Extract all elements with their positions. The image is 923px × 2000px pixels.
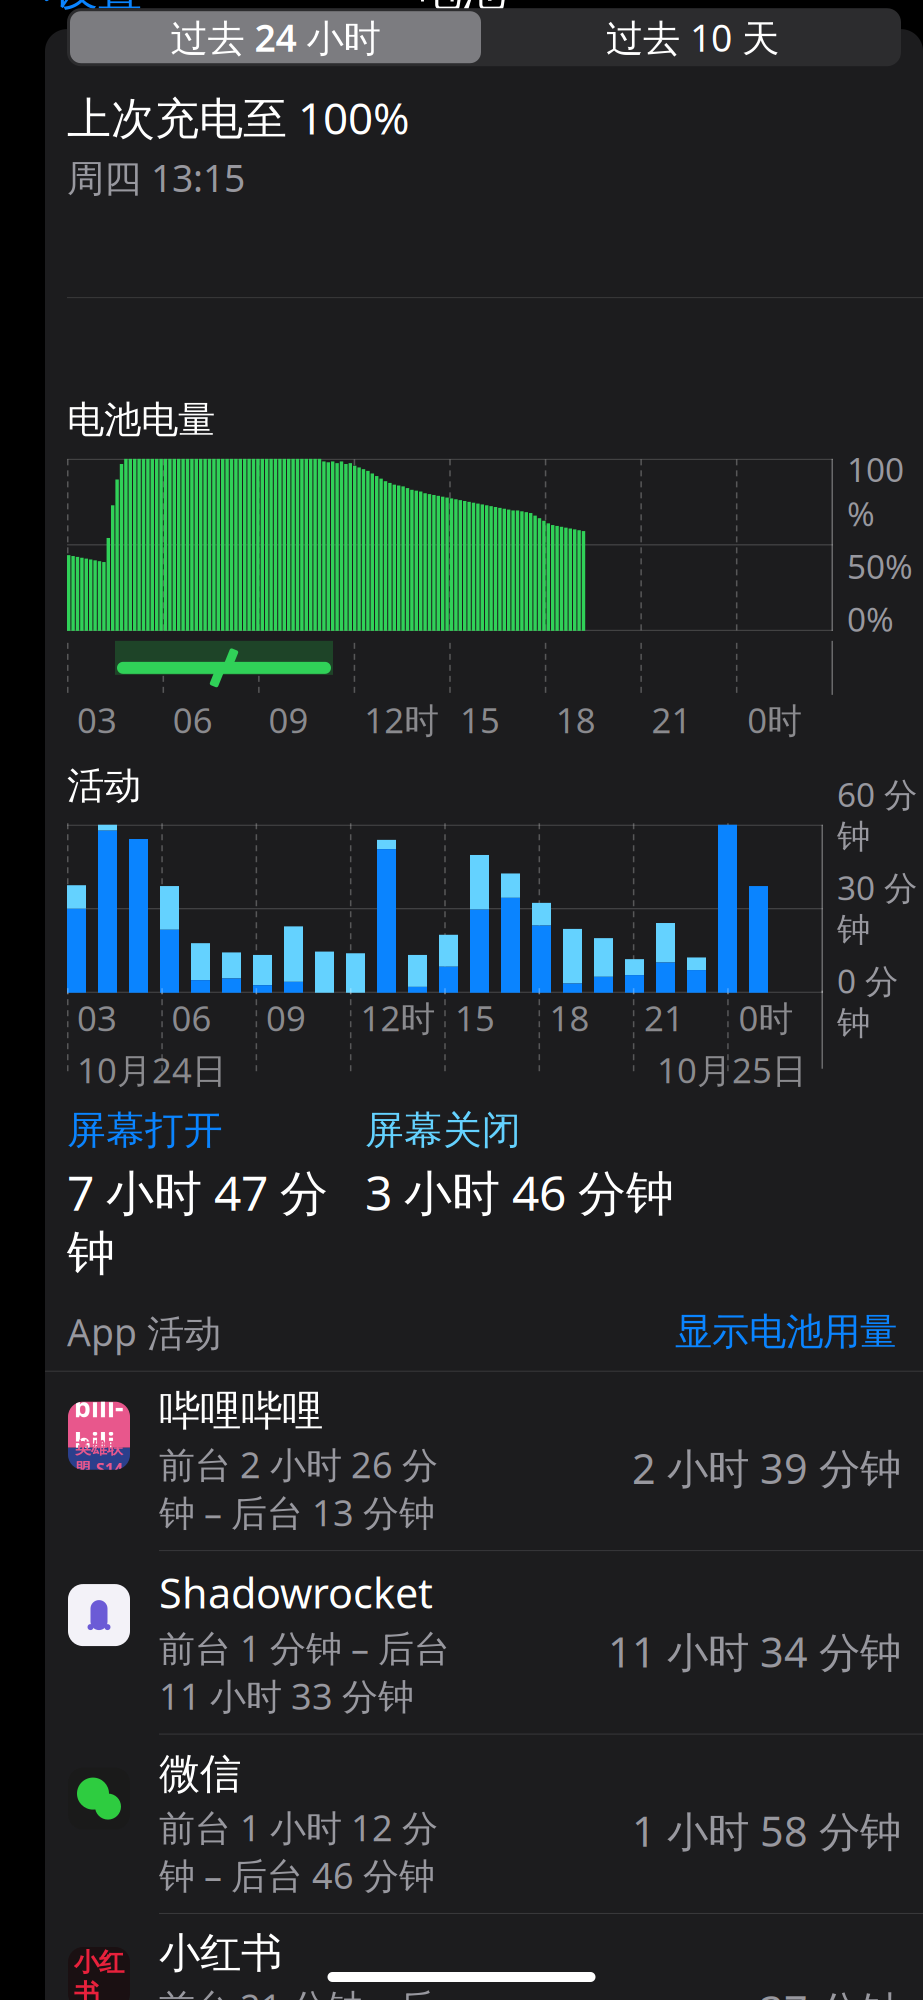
staticText: 10月25日 <box>657 1047 807 1093</box>
staticText: 前台 2 小时 26 分钟 – 后台 13 分钟 <box>159 1440 438 1536</box>
staticText: Shadowrocket <box>159 1565 433 1620</box>
button[interactable]: 过去 24 小时 <box>67 8 484 66</box>
staticText: 18 <box>556 697 596 743</box>
staticText: 上次充电至 100% <box>67 88 410 147</box>
button[interactable]: 过去 10 天 <box>484 8 901 66</box>
staticText: 15 <box>455 995 495 1041</box>
staticText: 21 <box>644 995 684 1041</box>
staticText: 屏幕打开 <box>67 1107 223 1154</box>
staticText: 03 <box>77 995 117 1041</box>
staticText: 7 小时 47 分钟 <box>67 1160 328 1283</box>
button[interactable]: Shadowrocket <box>45 1551 923 1735</box>
staticText: 60 分钟 <box>837 772 917 857</box>
staticText: 1 小时 58 分钟 <box>632 1803 901 1858</box>
staticText: 12时 <box>360 995 435 1041</box>
staticText: 设置 <box>54 0 142 17</box>
button[interactable]: 显示电池用量 <box>675 1309 897 1355</box>
staticText: 微信 <box>159 1749 241 1799</box>
staticText: App 活动 <box>67 1307 221 1357</box>
staticText: 30 分钟 <box>837 865 917 950</box>
staticText: 10月24日 <box>77 1047 227 1093</box>
staticText: 0 分钟 <box>837 958 898 1043</box>
staticText: 过去 10 天 <box>606 12 779 62</box>
staticText: 前台 21 分钟 – 后台 16 分钟 <box>159 1983 435 2000</box>
staticText: 电池电量 <box>67 397 215 443</box>
staticText: 周四 13:15 <box>67 153 245 202</box>
staticText: 06 <box>173 697 213 743</box>
staticText: 屏幕关闭 <box>365 1107 521 1154</box>
staticText: bilibili <box>74 1389 124 1460</box>
staticText: 活动 <box>67 763 141 809</box>
button[interactable]: 设置 <box>0 0 142 27</box>
staticText: 06 <box>171 995 211 1041</box>
staticText: 小红书 <box>74 1947 124 2000</box>
staticText: 12时 <box>364 697 439 743</box>
staticText: 37 分钟 <box>760 1983 901 2000</box>
staticText: 09 <box>268 697 308 743</box>
staticText: 11 小时 34 分钟 <box>608 1624 901 1679</box>
staticText: 3 小时 46 分钟 <box>365 1160 674 1224</box>
staticText: 哔哩哔哩 <box>159 1386 323 1436</box>
staticText: 前台 1 小时 12 分钟 – 后台 46 分钟 <box>159 1803 438 1899</box>
button[interactable]: 微信 <box>45 1735 923 1914</box>
staticText: 21 <box>651 697 691 743</box>
staticText: 小红书 <box>159 1928 282 1979</box>
staticText: 15 <box>460 697 500 743</box>
staticText: 电池 <box>417 0 505 17</box>
staticText: 09 <box>266 995 306 1041</box>
staticText: 过去 24 小时 <box>170 12 380 62</box>
button[interactable]: bilibili <box>45 1372 923 1551</box>
staticText: 50% <box>847 544 913 588</box>
button[interactable]: 小红书 <box>45 1914 923 2000</box>
staticText: 0% <box>847 597 894 641</box>
staticText: 前台 1 分钟 – 后台 11 小时 33 分钟 <box>159 1624 450 1720</box>
staticText: 0时 <box>747 697 802 743</box>
staticText: 100% <box>847 447 904 535</box>
staticText: 2 小时 39 分钟 <box>632 1440 901 1495</box>
staticText: 18 <box>549 995 589 1041</box>
staticText: 03 <box>77 697 117 743</box>
staticText: 英雄联盟 S14 <box>75 1438 123 1479</box>
staticText: 0时 <box>738 995 793 1041</box>
staticText: 显示电池用量 <box>675 1309 897 1355</box>
